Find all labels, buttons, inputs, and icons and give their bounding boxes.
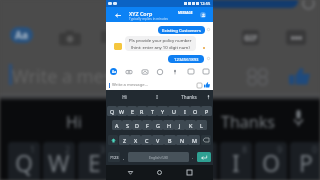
- staticText: N: [180, 137, 185, 144]
- button[interactable]: B: [164, 135, 176, 145]
- staticText: Q: [15, 147, 33, 178]
- button[interactable]: Existing Customers: [158, 26, 205, 34]
- staticText: H: [167, 122, 171, 129]
- button[interactable]: Q: [107, 106, 117, 116]
- staticText: J: [179, 122, 181, 129]
- staticText: Y: [161, 108, 165, 115]
- staticText: E: [88, 147, 101, 178]
- staticText: T: [151, 108, 154, 115]
- staticText: 12:55: [200, 1, 211, 6]
- button[interactable]: S: [122, 120, 132, 130]
- staticText: XYZ Corp: [129, 10, 153, 17]
- button[interactable]: J: [174, 120, 185, 130]
- button[interactable]: Shift: [108, 135, 118, 145]
- button[interactable]: English (UK): [128, 152, 189, 162]
- staticText: E: [131, 108, 134, 115]
- button[interactable]: 1234561893: [168, 55, 204, 63]
- staticText: I: [184, 108, 186, 115]
- button[interactable]: G: [152, 120, 163, 130]
- staticText: GIF: [244, 32, 258, 43]
- staticText: Thanks: [221, 111, 275, 133]
- button[interactable]: K: [185, 120, 196, 130]
- button[interactable]: I: [141, 90, 173, 103]
- staticText: 1234561893: [174, 56, 199, 62]
- staticText: Pls provide your policy number: [129, 37, 192, 43]
- button[interactable]: Back: [112, 10, 123, 21]
- button[interactable]: MESSAGE: [177, 10, 194, 16]
- staticText: .: [192, 155, 194, 160]
- button[interactable]: Z: [119, 135, 130, 145]
- button[interactable]: L: [196, 120, 207, 130]
- button[interactable]: Gallery: [141, 68, 148, 75]
- staticText: Aa: [112, 70, 116, 74]
- staticText: Thanks: [181, 94, 197, 100]
- button[interactable]: Backspace: [201, 135, 211, 145]
- button[interactable]: M: [188, 135, 200, 145]
- staticText: 8: [242, 143, 248, 155]
- button[interactable]: A: [112, 120, 122, 130]
- button[interactable]: ?123: [108, 152, 120, 162]
- button[interactable]: H: [163, 120, 174, 130]
- button[interactable]: Text formatting: [110, 68, 117, 75]
- staticText: U: [193, 147, 210, 178]
- staticText: C: [145, 137, 149, 144]
- button[interactable]: X: [130, 135, 141, 145]
- button[interactable]: R: [137, 106, 147, 116]
- button[interactable]: GIF: [187, 68, 194, 75]
- staticText: P: [299, 147, 313, 178]
- button[interactable]: Enter: [197, 152, 211, 162]
- button[interactable]: Pls provide your policy number: [125, 36, 196, 51]
- button[interactable]: F: [142, 120, 152, 130]
- button[interactable]: T: [147, 106, 157, 116]
- button[interactable]: I: [179, 106, 190, 116]
- staticText: Write a messag: [12, 64, 143, 89]
- button[interactable]: O: [190, 106, 201, 116]
- staticText: D: [135, 122, 139, 129]
- staticText: ?123: [110, 155, 119, 160]
- button[interactable]: Profile: [200, 12, 206, 18]
- button[interactable]: Sticker: [196, 82, 202, 88]
- button[interactable]: Voice input: [205, 94, 211, 100]
- button[interactable]: P: [201, 106, 212, 116]
- button[interactable]: Back: [125, 167, 136, 178]
- button[interactable]: More options: [202, 68, 209, 75]
- staticText: 9: [277, 143, 283, 155]
- button[interactable]: Y: [157, 106, 168, 116]
- staticText: P: [205, 108, 209, 115]
- staticText: MESSAGE: [178, 11, 193, 15]
- button[interactable]: D: [132, 120, 142, 130]
- button[interactable]: N: [176, 135, 188, 145]
- button[interactable]: Recents: [184, 167, 195, 178]
- staticText: I: [232, 147, 240, 178]
- staticText: L: [200, 122, 203, 129]
- button[interactable]: Camera: [125, 68, 132, 75]
- staticText: W: [48, 147, 70, 178]
- button[interactable]: Voice message: [171, 68, 178, 75]
- button[interactable]: Stickers: [156, 68, 163, 75]
- staticText: 7: [207, 143, 213, 155]
- button[interactable]: Hi: [108, 90, 141, 103]
- button[interactable]: E: [127, 106, 137, 116]
- staticText: S: [126, 122, 129, 129]
- staticText: Aa: [15, 28, 28, 42]
- staticText: I: [156, 94, 158, 100]
- button[interactable]: C: [141, 135, 152, 145]
- staticText: A: [115, 122, 119, 129]
- button[interactable]: U: [168, 106, 179, 116]
- staticText: G: [156, 122, 160, 129]
- staticText: Typically replies in minutes: [129, 17, 168, 21]
- button[interactable]: W: [117, 106, 127, 116]
- button[interactable]: Thanks: [173, 90, 205, 103]
- staticText: 2: [65, 143, 71, 155]
- staticText: (hint: enter any 10 digit num): [131, 44, 190, 50]
- staticText: Z: [123, 137, 127, 144]
- staticText: 3: [100, 143, 106, 155]
- staticText: 0: [312, 143, 318, 155]
- staticText: ,: [123, 155, 125, 160]
- button[interactable]: V: [152, 135, 164, 145]
- staticText: X: [134, 137, 138, 144]
- staticText: 1: [30, 143, 36, 155]
- staticText: R: [140, 108, 144, 115]
- staticText: B: [168, 137, 172, 144]
- button[interactable]: Home: [154, 167, 165, 178]
